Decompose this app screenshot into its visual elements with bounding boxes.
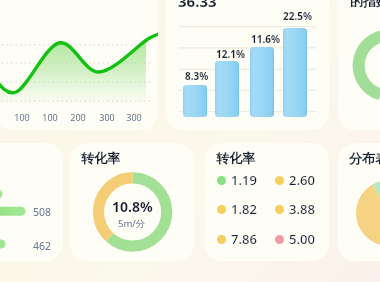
staticText: 36.33	[178, 0, 217, 11]
staticText: 100	[36, 111, 64, 130]
staticText: 3.88	[289, 200, 315, 218]
staticText: 转化率	[216, 150, 255, 166]
staticText: 5.00	[289, 230, 315, 248]
staticText: 300	[93, 111, 121, 130]
staticText: 10.8%	[112, 197, 153, 216]
staticText: 分布表	[349, 150, 380, 166]
staticText: 转化率	[81, 150, 120, 166]
staticText: 100	[8, 111, 36, 130]
staticText: 1.82	[231, 200, 257, 218]
staticText: 462	[33, 239, 52, 253]
button[interactable]: 分布表	[338, 143, 380, 261]
button[interactable]: 100	[0, 0, 158, 130]
staticText: 1.19	[231, 171, 257, 189]
staticText: 508	[33, 205, 52, 219]
staticText: 300	[120, 111, 148, 130]
staticText: 200	[64, 111, 92, 130]
button[interactable]: 508	[0, 143, 63, 261]
staticText: 的指数	[350, 0, 380, 9]
button[interactable]: 36.33	[166, 0, 329, 130]
staticText: 8.3%	[185, 69, 209, 83]
staticText: 7.86	[231, 230, 257, 248]
button[interactable]: 转化率	[70, 143, 194, 261]
button[interactable]: 的指数	[338, 0, 380, 130]
staticText: 5m/分	[118, 217, 146, 230]
button[interactable]: 转化率	[205, 143, 329, 261]
staticText: 11.6%	[251, 32, 280, 46]
staticText: 22.5%	[283, 9, 312, 23]
staticText: 2.60	[289, 171, 315, 189]
staticText: 12.1%	[216, 47, 245, 61]
